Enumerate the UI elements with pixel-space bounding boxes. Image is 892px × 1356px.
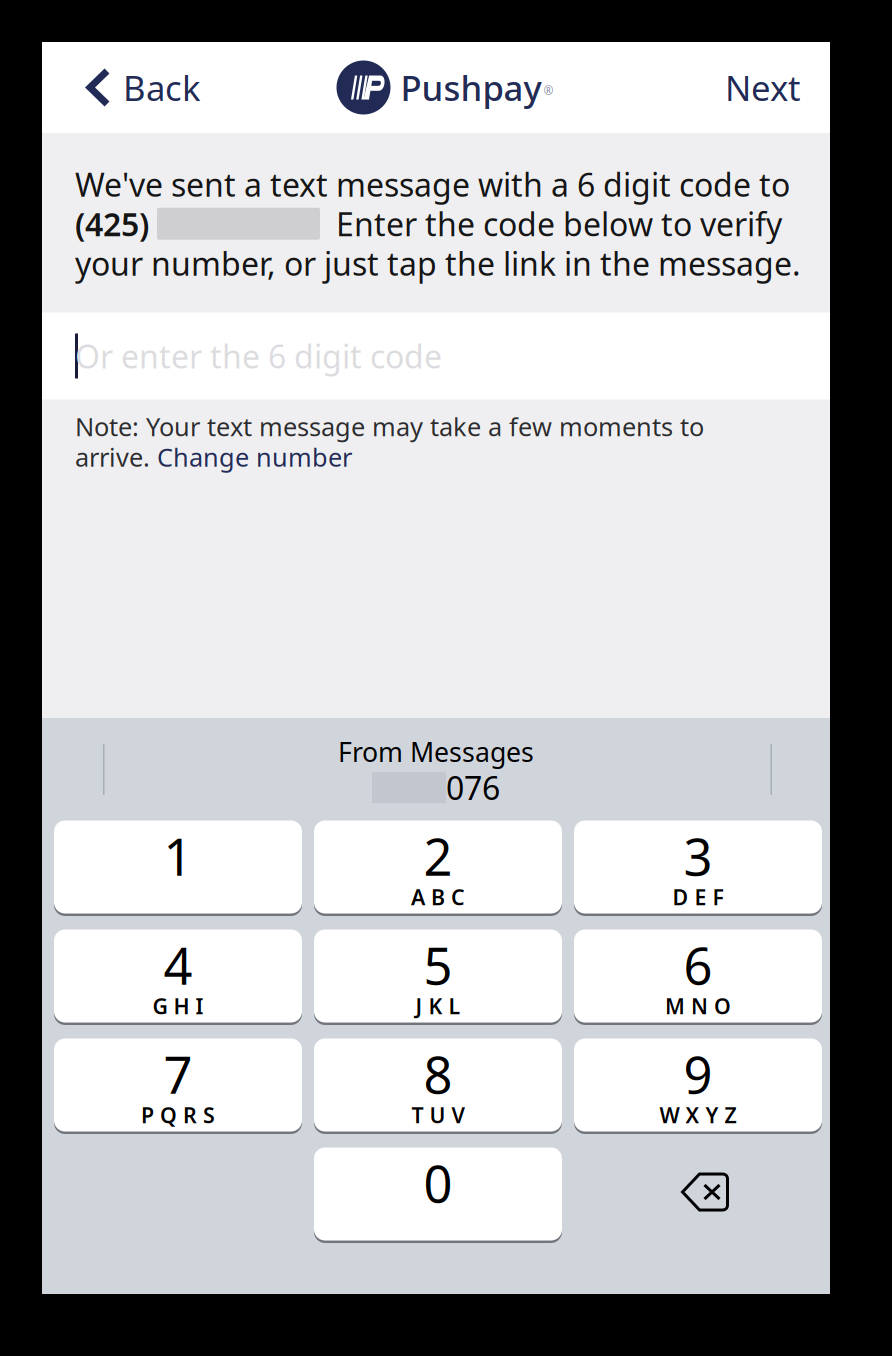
staticText: 3	[683, 822, 712, 890]
staticText: Note: Your text message may take a few m…	[75, 409, 704, 443]
staticText: ®	[543, 82, 553, 98]
button[interactable]: 7	[54, 1039, 302, 1134]
staticText: M N O	[665, 992, 731, 1020]
button[interactable]: 5	[314, 930, 562, 1025]
staticText: (425)	[75, 202, 157, 245]
staticText: W X Y Z	[659, 1101, 736, 1129]
button[interactable]: 8	[314, 1039, 562, 1134]
staticText: 7	[163, 1040, 192, 1108]
button[interactable]: Delete	[574, 1148, 822, 1243]
staticText: D E F	[672, 883, 723, 911]
staticText: 0	[423, 1149, 452, 1217]
button[interactable]: 4	[54, 930, 302, 1025]
staticText: 9	[683, 1040, 712, 1108]
button[interactable]: Change number	[157, 440, 352, 474]
staticText: From Messages	[338, 734, 534, 769]
staticText: arrive.	[75, 440, 157, 474]
staticText: A B C	[411, 883, 465, 911]
button[interactable]: Next	[705, 42, 830, 133]
button[interactable]: 0	[314, 1148, 562, 1243]
staticText: your number, or just tap the link in the…	[75, 242, 801, 284]
staticText: Back	[123, 64, 201, 110]
button[interactable]: 3	[574, 821, 822, 916]
staticText: 076	[446, 766, 500, 809]
button[interactable]: Back	[42, 42, 221, 133]
staticText: Pushpay	[400, 64, 541, 110]
button[interactable]: 2	[314, 821, 562, 916]
staticText: 4	[163, 931, 192, 999]
staticText: 1	[163, 822, 192, 890]
staticText: 2	[423, 822, 452, 890]
button[interactable]: 9	[574, 1039, 822, 1134]
staticText: T U V	[411, 1101, 464, 1129]
staticText: G H I	[152, 992, 203, 1020]
staticText: Or enter the 6 digit code	[75, 335, 442, 377]
button[interactable]: 6	[574, 930, 822, 1025]
button[interactable]: 1	[54, 821, 302, 916]
staticText: P Q R S	[141, 1101, 215, 1129]
staticText: Next	[725, 64, 801, 110]
staticText: J K L	[415, 992, 460, 1020]
staticText: 8	[423, 1040, 452, 1108]
staticText: We've sent a text message with a 6 digit…	[75, 163, 790, 205]
staticText: Change number	[157, 440, 352, 474]
staticText: 5	[423, 931, 452, 999]
staticText: 6	[683, 931, 712, 999]
staticText: Enter the code below to verify	[320, 202, 782, 245]
